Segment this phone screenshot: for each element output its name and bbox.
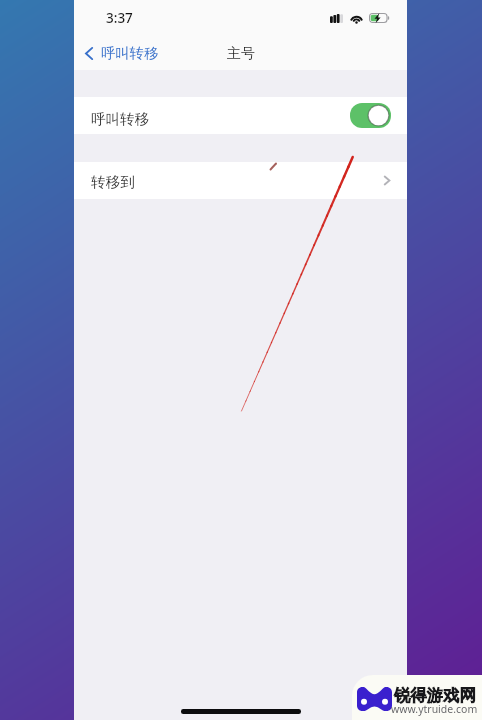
staticText: www.ytruide.com (391, 702, 478, 716)
staticText: 呼叫转移 (91, 110, 149, 128)
staticText: 转移到 (91, 173, 135, 191)
staticText: 主号 (227, 45, 255, 63)
staticText: 3:37 (106, 9, 133, 27)
button[interactable]: 转移到 (74, 162, 407, 199)
staticText: 呼叫转移 (101, 44, 159, 62)
button[interactable]: 呼叫转移开关 (350, 103, 391, 128)
staticText: 锐得游戏网 (394, 685, 476, 706)
button[interactable]: 返回 呼叫转移 (82, 39, 162, 67)
button[interactable]: 呼叫转移 (74, 97, 407, 134)
